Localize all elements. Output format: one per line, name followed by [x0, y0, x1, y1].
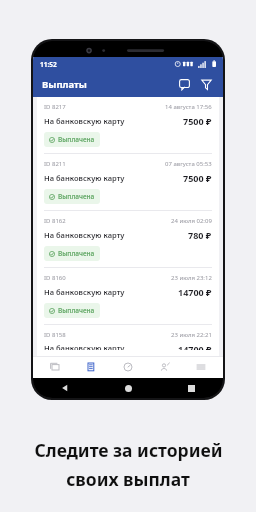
staticText: 11:52 [40, 60, 57, 69]
staticText: 14700 ₽ [178, 286, 212, 298]
staticText: 23 июля 22:21 [171, 331, 212, 339]
staticText: На банковскую карту [44, 116, 125, 126]
staticText: ID 8211 [44, 160, 66, 168]
staticText: 780 ₽ [188, 229, 212, 241]
staticText: ID 8158 [44, 331, 66, 339]
staticText: На банковскую карту [44, 287, 125, 297]
staticText: Выплачена [58, 249, 95, 258]
staticText: 23 июля 23:12 [171, 274, 212, 282]
button[interactable]: Payouts [76, 356, 106, 378]
staticText: ID 8217 [44, 103, 66, 111]
button[interactable]: ID 8217 [37, 97, 219, 153]
button[interactable]: ID 8162 [37, 211, 219, 267]
button[interactable]: Chat [175, 75, 194, 94]
button[interactable]: Profile [150, 356, 180, 378]
staticText: 07 августа 05:53 [165, 160, 212, 168]
staticText: 7500 ₽ [183, 172, 212, 184]
button[interactable]: ID 8158 [37, 325, 219, 356]
staticText: Выплаты [42, 78, 87, 91]
button[interactable]: ID 8160 [37, 268, 219, 324]
button[interactable]: Stats [113, 356, 143, 378]
staticText: Выплачена [58, 306, 95, 315]
staticText: На банковскую карту [44, 173, 125, 183]
button[interactable]: Menu [186, 356, 216, 378]
staticText: ID 8160 [44, 274, 66, 282]
staticText: ID 8162 [44, 217, 66, 225]
staticText: 7500 ₽ [183, 115, 212, 127]
staticText: 14 августа 17:56 [165, 103, 212, 111]
staticText: На банковскую карту [44, 230, 125, 240]
staticText: На банковскую карту [44, 343, 125, 350]
staticText: 24 июля 02:09 [171, 217, 212, 225]
button[interactable]: ID 8211 [37, 154, 219, 210]
button[interactable]: Filter [197, 75, 216, 94]
staticText: 14700 ₽ [178, 343, 212, 350]
staticText: своих выплат [66, 467, 190, 491]
staticText: Выплачена [58, 135, 95, 144]
staticText: Следите за историей [34, 438, 223, 462]
staticText: Выплачена [58, 192, 95, 201]
button[interactable]: Orders [40, 356, 70, 378]
